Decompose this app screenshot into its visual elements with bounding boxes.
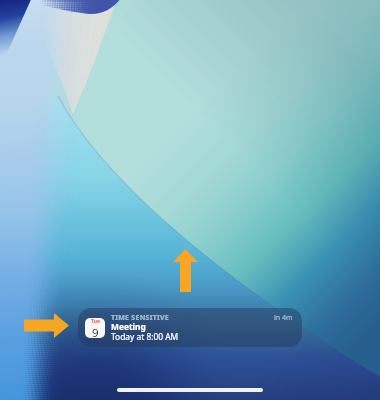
staticText: Meeting xyxy=(111,321,146,332)
staticText: in 4m xyxy=(274,313,293,323)
staticText: Tue xyxy=(91,318,100,325)
staticText: 9 xyxy=(92,325,99,338)
button[interactable]: Tue xyxy=(78,308,302,347)
other: Arrow pointing right xyxy=(24,313,69,338)
other: Arrow pointing up xyxy=(173,249,198,292)
staticText: TIME SENSITIVE xyxy=(111,313,169,323)
staticText: Today at 8:00 AM xyxy=(111,331,179,342)
